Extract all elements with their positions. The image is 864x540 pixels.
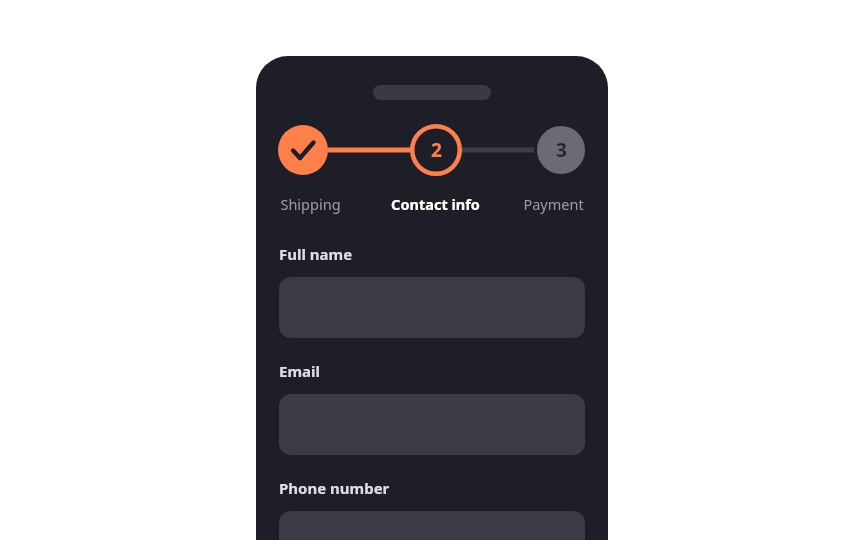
staticText: Full name [279, 244, 353, 264]
staticText: Payment [523, 194, 584, 214]
staticText: Phone number [279, 478, 390, 498]
button[interactable]: Shipping step completed [278, 125, 328, 175]
staticText: Shipping [280, 194, 341, 214]
staticText: 3 [556, 137, 567, 163]
staticText: Email [279, 361, 320, 381]
button[interactable]: Payment [483, 193, 623, 215]
staticText: Contact info [391, 194, 480, 214]
button[interactable]: Shipping [240, 193, 380, 215]
button[interactable]: 3 [537, 126, 585, 174]
button[interactable]: 2 [410, 124, 462, 176]
staticText: 2 [431, 137, 442, 163]
button[interactable]: Contact info [365, 193, 505, 215]
